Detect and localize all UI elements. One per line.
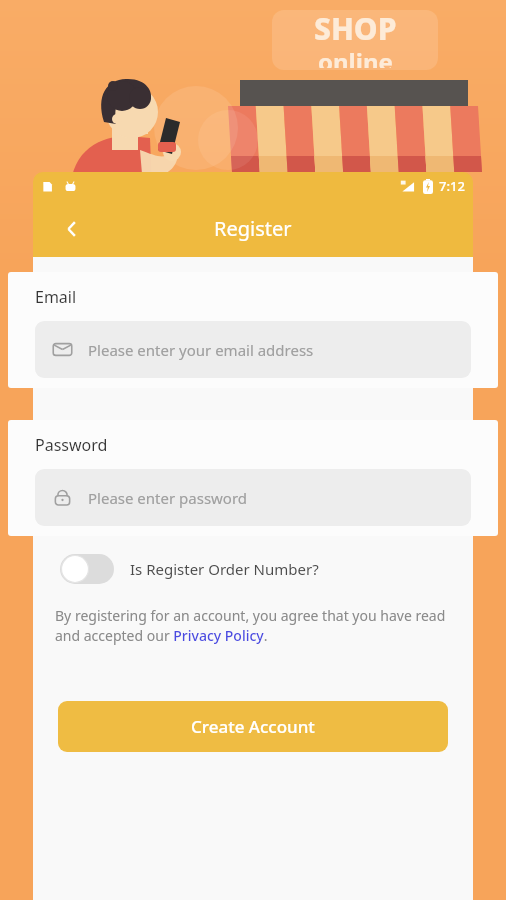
button[interactable]: Is Register Order Number? [60,554,319,584]
staticText: Password [35,434,108,456]
staticText: Register [214,215,292,242]
staticText: online [318,45,393,68]
staticText: Create Account [191,715,315,738]
staticText: Email [35,286,77,308]
staticText: SHOP [314,8,397,49]
button[interactable]: Back [55,212,89,246]
staticText: Is Register Order Number? [130,559,319,579]
staticText: By registering for an account, you agree… [55,606,451,646]
button[interactable]: Please enter password [35,469,471,526]
button[interactable]: Please enter your email address [35,321,471,378]
staticText: 7:12 [439,177,465,195]
staticText: Please enter your email address [88,340,314,360]
staticText: Please enter password [88,488,248,508]
button[interactable]: Create Account [58,701,448,752]
